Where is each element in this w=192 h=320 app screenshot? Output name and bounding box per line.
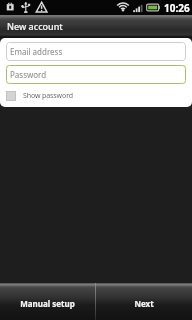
button[interactable]: Password xyxy=(6,65,186,84)
staticText: Next xyxy=(134,298,154,309)
staticText: 10:26 xyxy=(164,1,190,15)
button[interactable]: Email address xyxy=(6,42,186,61)
staticText: Manual setup xyxy=(20,298,75,309)
button[interactable]: Show password xyxy=(6,91,74,101)
staticText: New account xyxy=(7,20,63,32)
button[interactable]: Manual setup xyxy=(0,283,95,320)
staticText: Password xyxy=(10,69,47,80)
staticText: Email address xyxy=(10,46,63,57)
staticText: Show password xyxy=(23,91,74,101)
button[interactable]: Next xyxy=(96,283,192,320)
